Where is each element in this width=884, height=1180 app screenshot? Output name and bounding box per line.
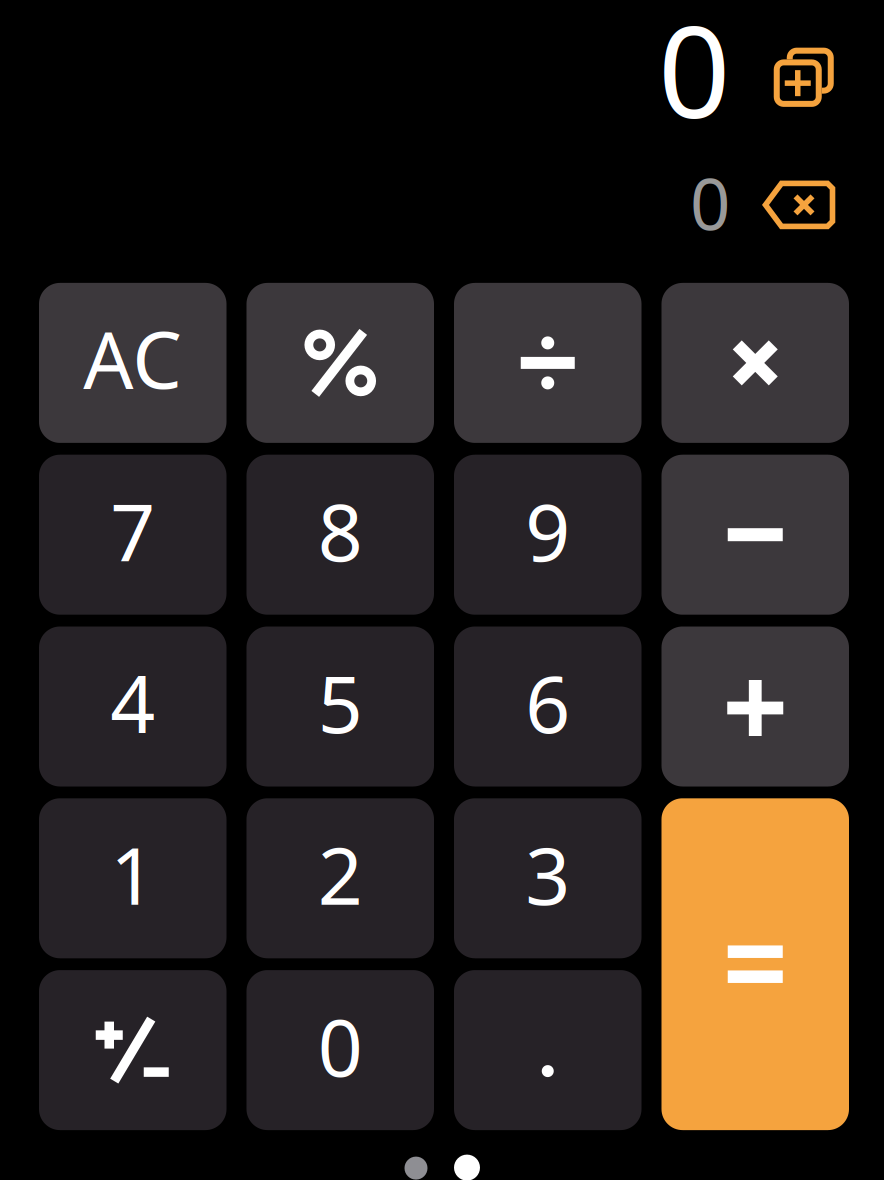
button[interactable]: Multiply bbox=[661, 283, 849, 443]
button[interactable]: Decimal point bbox=[454, 970, 641, 1130]
staticText: 7 bbox=[110, 478, 155, 583]
staticText: 0 bbox=[658, 0, 730, 153]
button[interactable]: 2 bbox=[246, 798, 434, 958]
button[interactable]: Delete bbox=[762, 180, 836, 230]
staticText: 3 bbox=[525, 822, 570, 927]
button[interactable]: 9 bbox=[454, 455, 641, 615]
button[interactable]: 8 bbox=[246, 455, 434, 615]
button[interactable]: 4 bbox=[39, 626, 226, 786]
button[interactable]: Plus minus bbox=[39, 970, 226, 1130]
button[interactable]: Equals bbox=[661, 798, 849, 1130]
button[interactable]: Minus bbox=[661, 455, 849, 615]
button[interactable]: 3 bbox=[454, 798, 641, 958]
button[interactable]: Plus bbox=[661, 626, 849, 786]
button[interactable]: 6 bbox=[454, 626, 641, 786]
staticText: 2 bbox=[318, 822, 363, 927]
staticText: 9 bbox=[525, 478, 570, 583]
button[interactable]: 0 bbox=[246, 970, 434, 1130]
staticText: 6 bbox=[525, 650, 570, 755]
button[interactable]: AC bbox=[39, 283, 226, 443]
staticText: 0 bbox=[690, 156, 730, 250]
button[interactable]: 7 bbox=[39, 455, 226, 615]
staticText: AC bbox=[83, 306, 182, 410]
staticText: 0 bbox=[318, 994, 363, 1098]
staticText: 5 bbox=[318, 650, 363, 755]
button[interactable]: 1 bbox=[39, 798, 226, 958]
button[interactable]: Percent bbox=[246, 283, 434, 443]
staticText: 8 bbox=[318, 478, 363, 583]
staticText: 1 bbox=[110, 822, 155, 927]
button[interactable]: Divide bbox=[454, 283, 641, 443]
button[interactable]: Add to memory bbox=[774, 47, 834, 107]
staticText: 4 bbox=[110, 650, 155, 755]
button[interactable]: 5 bbox=[246, 626, 434, 786]
